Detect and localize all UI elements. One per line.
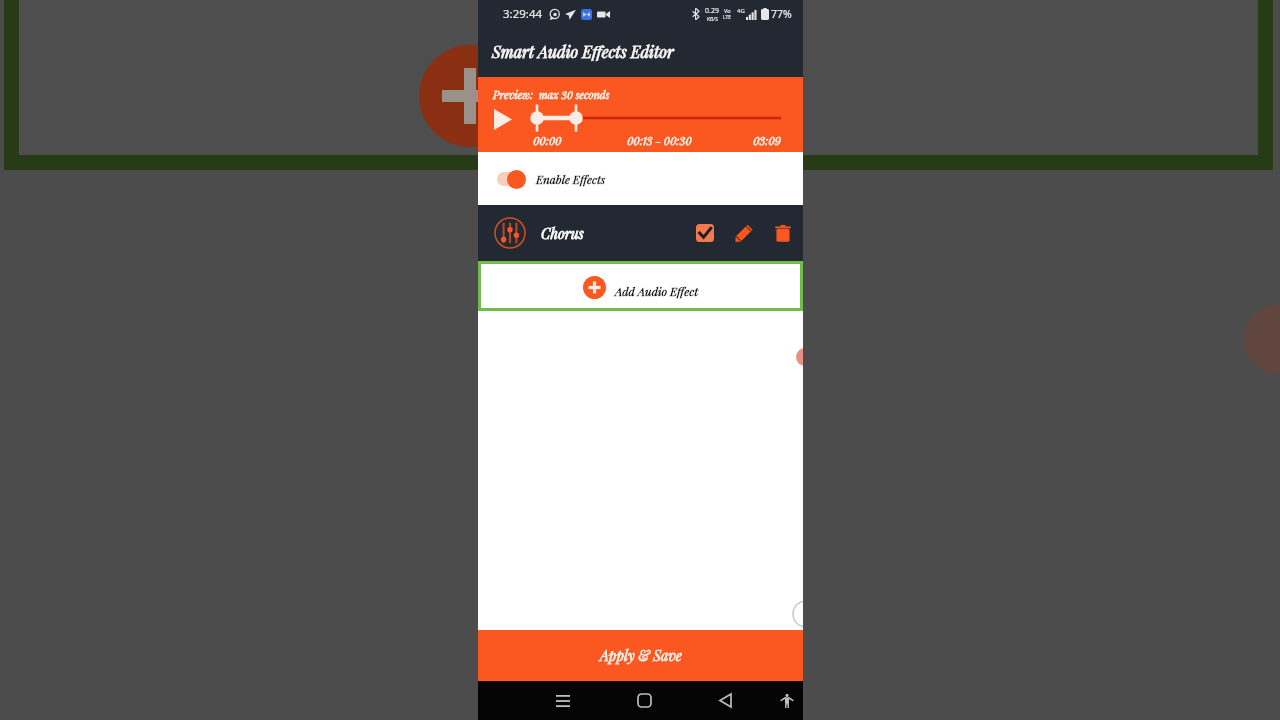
button[interactable]: Edit Chorus: [727, 216, 761, 250]
button[interactable]: Accessibility menu: [768, 681, 806, 720]
button[interactable]: Enable Chorus: [688, 216, 722, 250]
staticText: Apply & Save: [600, 646, 682, 665]
button[interactable]: Recent apps: [544, 681, 582, 720]
staticText: Preview:: [493, 87, 534, 102]
button[interactable]: Add Audio Effect: [481, 264, 800, 308]
button[interactable]: Chorus: [478, 205, 803, 261]
button[interactable]: Home: [625, 681, 663, 720]
button[interactable]: Enable Effects: [478, 152, 803, 205]
staticText: 0.29: [705, 6, 719, 16]
staticText: KB/S: [707, 16, 718, 23]
staticText: 00:13 - 00:30: [627, 133, 692, 148]
staticText: Smart Audio Effects Editor: [492, 41, 674, 62]
staticText: Chorus: [541, 224, 584, 243]
staticText: Vo: [724, 7, 731, 14]
button[interactable]: Delete Chorus: [766, 216, 800, 250]
staticText: Add Audio Effect: [615, 283, 699, 298]
staticText: 00:00: [533, 133, 562, 148]
button[interactable]: Trim range: [478, 77, 803, 152]
button[interactable]: Back: [706, 681, 744, 720]
staticText: Enable Effects: [536, 171, 606, 186]
button[interactable]: Apply & Save: [478, 630, 803, 681]
staticText: 3:29:44: [503, 6, 543, 22]
staticText: 03:09: [753, 133, 781, 148]
staticText: 4G: [737, 7, 745, 15]
staticText: 77%: [771, 7, 792, 21]
button[interactable]: Play preview: [488, 104, 518, 134]
staticText: max 30 seconds: [539, 88, 610, 102]
staticText: LTE: [723, 14, 732, 21]
